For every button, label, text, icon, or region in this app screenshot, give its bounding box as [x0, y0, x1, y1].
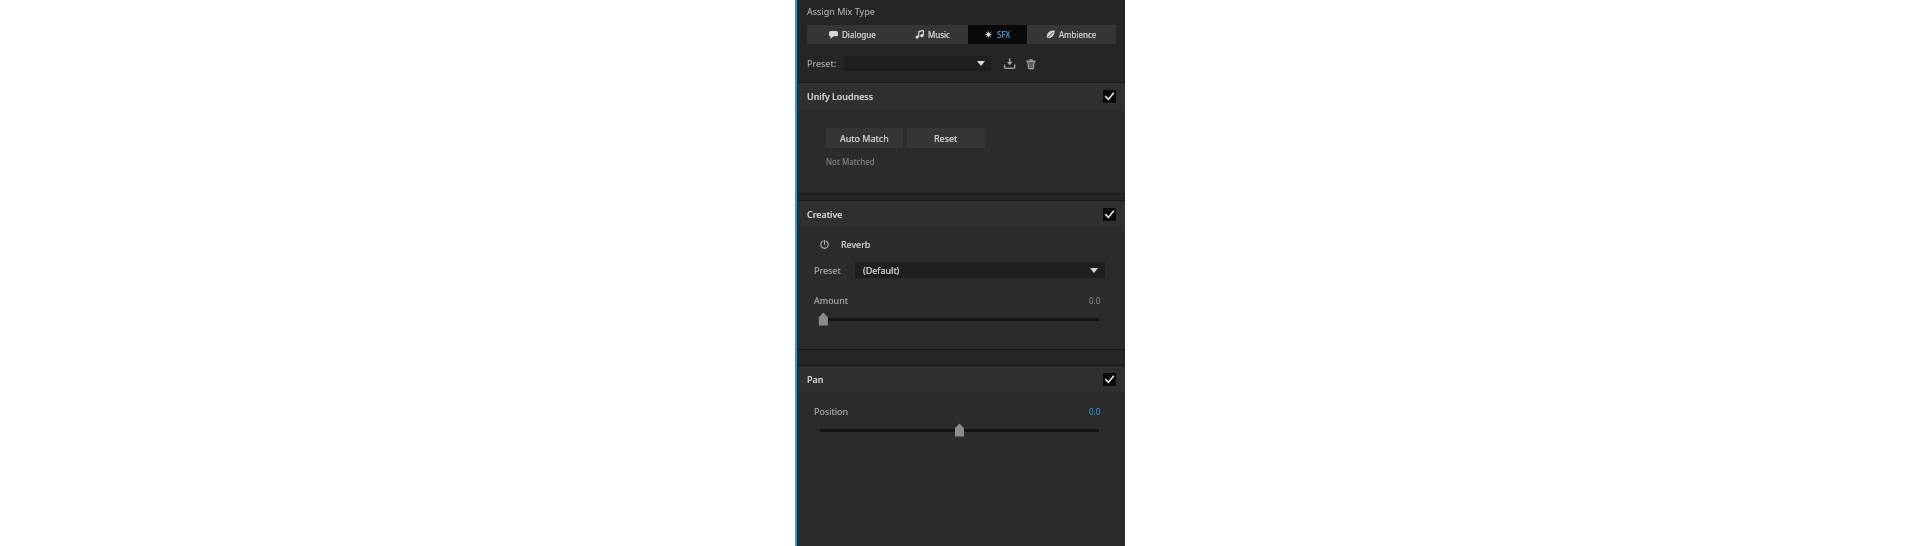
staticText: Reset — [934, 132, 958, 144]
staticText: Music — [928, 29, 950, 40]
staticText: Assign Mix Type — [807, 5, 875, 17]
button[interactable]: Toggle section enabled — [1103, 208, 1116, 221]
button[interactable]: Reset — [907, 128, 985, 148]
button[interactable]: Preset dropdown — [843, 56, 991, 71]
staticText: Not Matched — [826, 156, 875, 167]
button[interactable]: Auto Match — [826, 128, 903, 148]
button[interactable]: Dialogue — [807, 25, 897, 44]
button[interactable]: Reverb preset — [855, 262, 1105, 278]
staticText: Unify Loudness — [807, 90, 874, 102]
button[interactable]: Toggle section enabled — [1103, 90, 1116, 103]
staticText: Amount — [814, 294, 848, 306]
staticText: Auto Match — [840, 132, 889, 144]
staticText: 0.0 — [1089, 295, 1101, 306]
button[interactable]: Save preset — [1003, 57, 1016, 70]
staticText: Preset: — [807, 57, 837, 69]
staticText: (Default) — [863, 264, 900, 276]
staticText: Ambience — [1059, 29, 1097, 40]
staticText: Preset — [814, 264, 841, 276]
staticText: Position — [814, 405, 849, 417]
staticText: Reverb — [841, 238, 871, 250]
button[interactable]: Toggle section enabled — [1103, 373, 1116, 386]
staticText: SFX — [997, 29, 1011, 40]
button[interactable]: SFX — [968, 25, 1027, 44]
button[interactable]: Toggle Reverb — [818, 238, 830, 250]
staticText: Pan — [807, 373, 824, 385]
button[interactable]: Ambience — [1027, 25, 1116, 44]
button[interactable]: Position slider — [820, 423, 1099, 437]
button[interactable]: Music — [897, 25, 968, 44]
staticText: Dialogue — [842, 29, 876, 40]
staticText: 0.0 — [1089, 406, 1101, 417]
staticText: Creative — [807, 208, 843, 220]
button[interactable]: Amount slider — [820, 312, 1099, 326]
button[interactable]: Toggle Reverb — [818, 238, 871, 250]
button[interactable]: Delete preset — [1024, 57, 1037, 70]
